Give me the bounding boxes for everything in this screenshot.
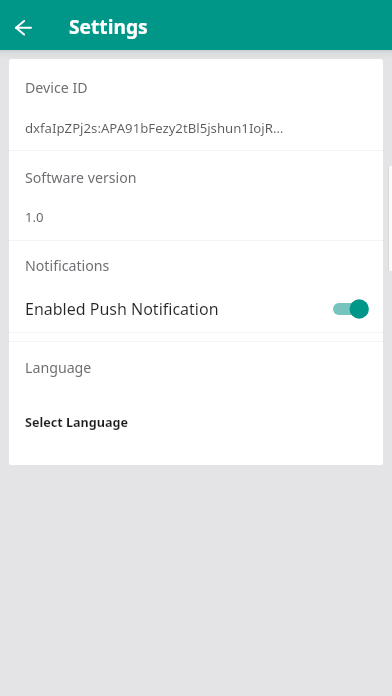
- staticText: Language: [25, 358, 92, 377]
- button[interactable]: Device ID: [9, 59, 383, 150]
- button[interactable]: Select Language: [9, 377, 383, 457]
- staticText: 1.0: [25, 208, 44, 226]
- button[interactable]: Enabled Push Notification: [9, 275, 383, 332]
- staticText: Device ID: [25, 78, 88, 97]
- staticText: dxfaIpZPj2s:APA91bFezy2tBl5jshun1IojR…: [25, 119, 284, 137]
- staticText: Settings: [69, 13, 148, 39]
- button[interactable]: Software version: [9, 151, 383, 240]
- staticText: Software version: [25, 168, 137, 187]
- button[interactable]: Back: [4, 7, 42, 47]
- staticText: Select Language: [25, 414, 128, 431]
- staticText: Notifications: [25, 256, 110, 275]
- staticText: Enabled Push Notification: [25, 298, 219, 320]
